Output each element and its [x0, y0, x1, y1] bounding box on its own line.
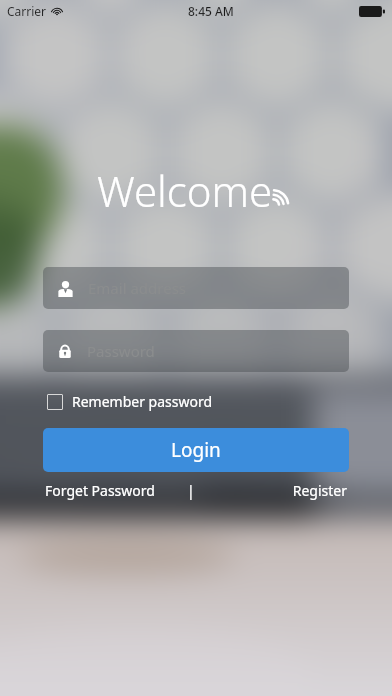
button[interactable]: Password field [43, 330, 349, 372]
staticText: Register [292, 481, 347, 500]
button[interactable]: Forget Password [43, 478, 157, 503]
staticText: Welcome [97, 162, 273, 219]
staticText: Login [171, 437, 221, 463]
button[interactable]: Register [290, 478, 349, 503]
staticText: Remember password [72, 392, 213, 411]
staticText: Carrier [7, 3, 47, 19]
staticText: 8:45 AM [188, 3, 234, 19]
staticText: Forget Password [45, 481, 155, 500]
staticText: | [187, 481, 195, 500]
button[interactable]: Login [43, 428, 349, 472]
button[interactable]: Email address field [43, 267, 349, 309]
button[interactable]: Remember password [43, 388, 217, 415]
staticText: Password [87, 341, 155, 361]
